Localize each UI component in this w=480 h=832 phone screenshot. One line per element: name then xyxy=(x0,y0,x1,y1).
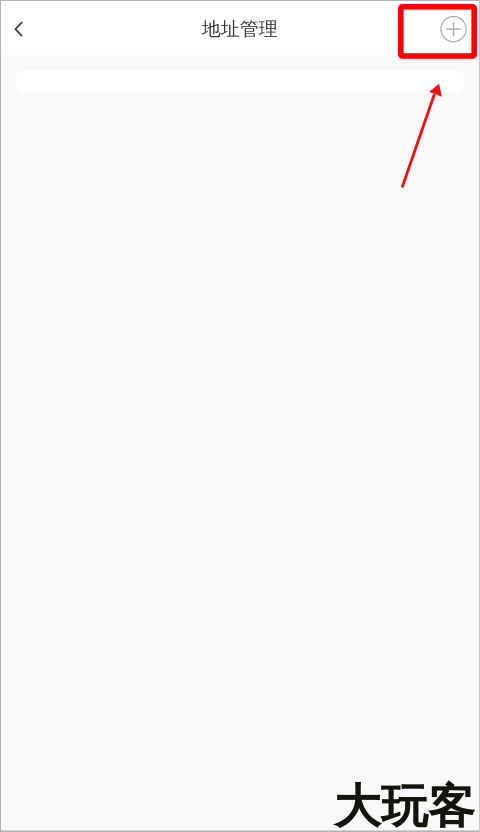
button[interactable]: Add address xyxy=(427,0,480,55)
button[interactable]: Back xyxy=(0,0,37,55)
button[interactable]: Address list xyxy=(0,71,480,92)
staticText: 地址管理 xyxy=(202,17,278,40)
staticText: 大玩客 xyxy=(334,778,475,832)
